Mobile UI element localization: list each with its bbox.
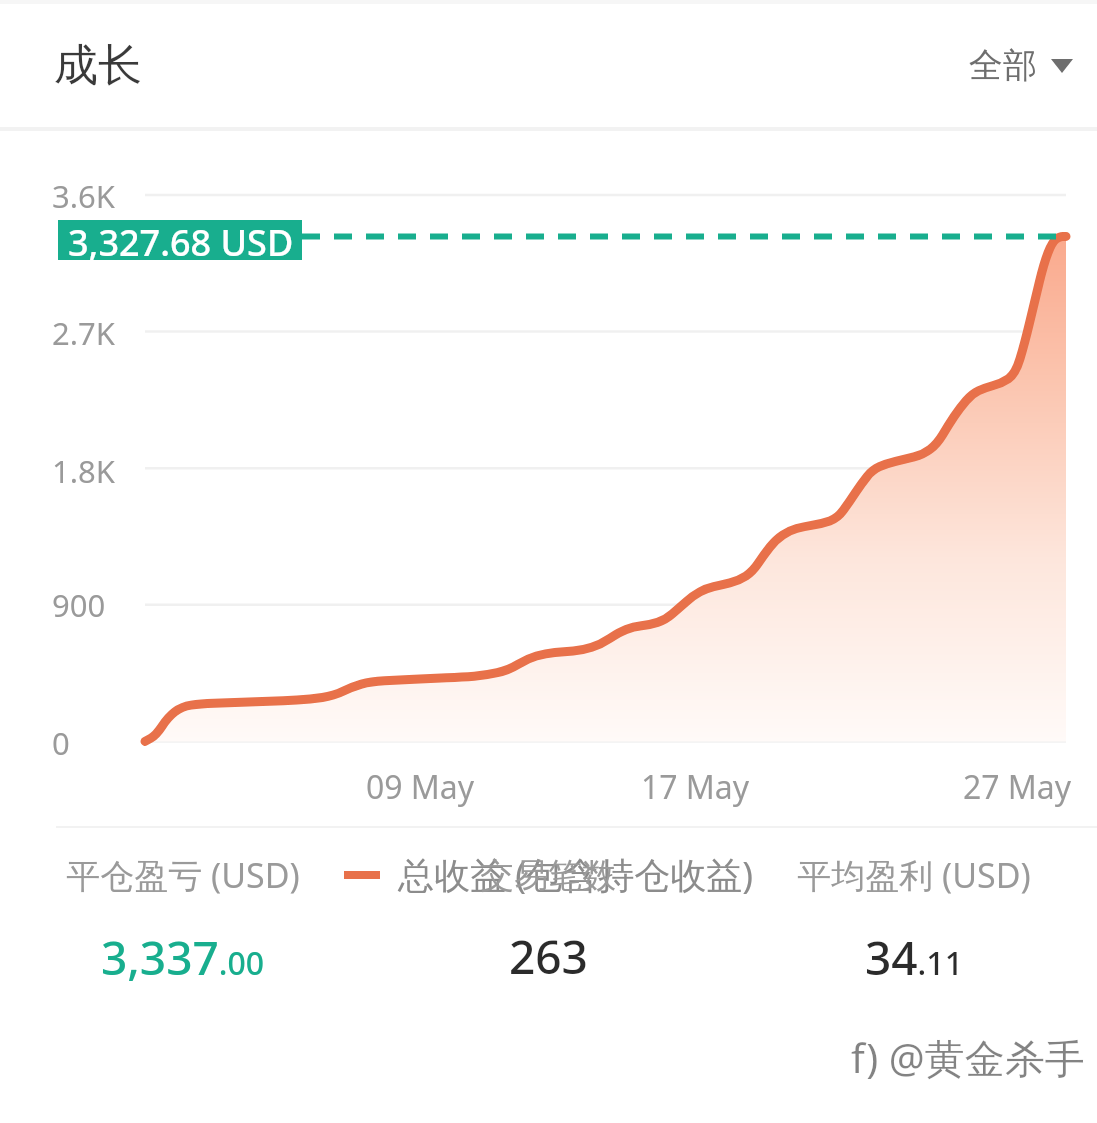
- button[interactable]: 平仓盈亏 (USD): [0, 852, 365, 989]
- staticText: 900: [52, 584, 106, 626]
- staticText: 成长: [54, 38, 142, 93]
- staticText: 平均盈利 (USD): [797, 852, 1031, 898]
- button[interactable]: 平均盈利 (USD): [731, 852, 1097, 989]
- staticText: 34.11: [865, 926, 963, 989]
- staticText: 09 May: [358, 765, 482, 809]
- staticText: 平仓盈亏 (USD): [66, 852, 300, 898]
- staticText: 1.8K: [52, 450, 115, 492]
- staticText: 3.6K: [52, 175, 115, 217]
- staticText: 2.7K: [52, 312, 115, 354]
- button[interactable]: 交易笔数: [365, 854, 731, 988]
- staticText: 全部: [969, 44, 1037, 87]
- staticText: 27 May: [955, 765, 1079, 809]
- staticText: 17 May: [633, 765, 757, 809]
- button[interactable]: 全部: [945, 30, 1097, 101]
- staticText: 总收益 (包含持仓收益): [398, 850, 753, 899]
- staticText: 0: [52, 722, 70, 764]
- staticText: 3,327.68 USD: [68, 218, 294, 267]
- staticText: f) @黄金杀手: [851, 1030, 1085, 1085]
- staticText: 交易笔数: [480, 854, 616, 897]
- staticText: 263: [509, 925, 588, 988]
- staticText: 3,337.00: [101, 926, 265, 989]
